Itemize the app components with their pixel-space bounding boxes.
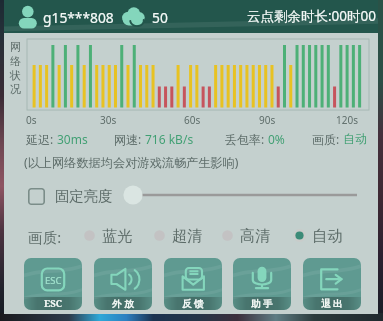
staticText: 网速: (114, 131, 145, 147)
staticText: ESC (45, 274, 62, 287)
staticText: 高清 (240, 226, 271, 245)
button[interactable]: 蓝光 (83, 224, 133, 246)
staticText: 画质: (312, 131, 343, 147)
button[interactable]: 固定亮度 checkbox (28, 188, 45, 205)
staticText: 716 kB/s (145, 131, 194, 147)
staticText: 画质: (28, 227, 62, 247)
staticText: 状 (10, 68, 21, 82)
staticText: 延迟: (26, 131, 57, 147)
staticText: 反 馈 (182, 297, 204, 310)
staticText: 60s (184, 113, 201, 127)
staticText: 0s (26, 113, 37, 127)
staticText: 超清 (172, 226, 203, 245)
staticText: 云点剩余时长:00时00 (247, 7, 377, 25)
staticText: (以上网络数据均会对游戏流畅产生影响) (24, 154, 239, 171)
staticText: 90s (259, 113, 276, 127)
button[interactable]: 自动 (293, 224, 343, 246)
staticText: 自动 (343, 131, 367, 146)
button[interactable]: Speaker (94, 258, 152, 310)
staticText: 外 放 (112, 297, 134, 310)
button[interactable]: g15***808 (4, 0, 378, 33)
staticText: 120s (336, 113, 358, 127)
staticText: 30ms (57, 131, 88, 147)
staticText: g15***808 (43, 8, 114, 27)
staticText: 网 (10, 40, 21, 54)
staticText: 络 (10, 54, 21, 68)
staticText: 30s (100, 113, 117, 127)
staticText: 50 (152, 8, 168, 27)
button[interactable]: Assistant (233, 258, 291, 310)
staticText: 丢包率: (225, 131, 268, 147)
button[interactable]: Brightness slider (123, 184, 368, 206)
button[interactable]: 超清 (153, 224, 203, 246)
staticText: 助 手 (251, 297, 273, 310)
button[interactable]: 高清 (221, 224, 271, 246)
staticText: 蓝光 (102, 226, 133, 245)
staticText: 固定亮度 (55, 187, 113, 205)
staticText: 0% (268, 131, 285, 147)
button[interactable]: Exit (303, 258, 361, 310)
staticText: ESC (44, 297, 63, 310)
button[interactable]: Feedback (164, 258, 222, 310)
staticText: 自动 (312, 226, 343, 245)
staticText: 退 出 (321, 297, 343, 310)
staticText: 况 (10, 82, 21, 96)
button[interactable]: ESC (24, 258, 82, 310)
